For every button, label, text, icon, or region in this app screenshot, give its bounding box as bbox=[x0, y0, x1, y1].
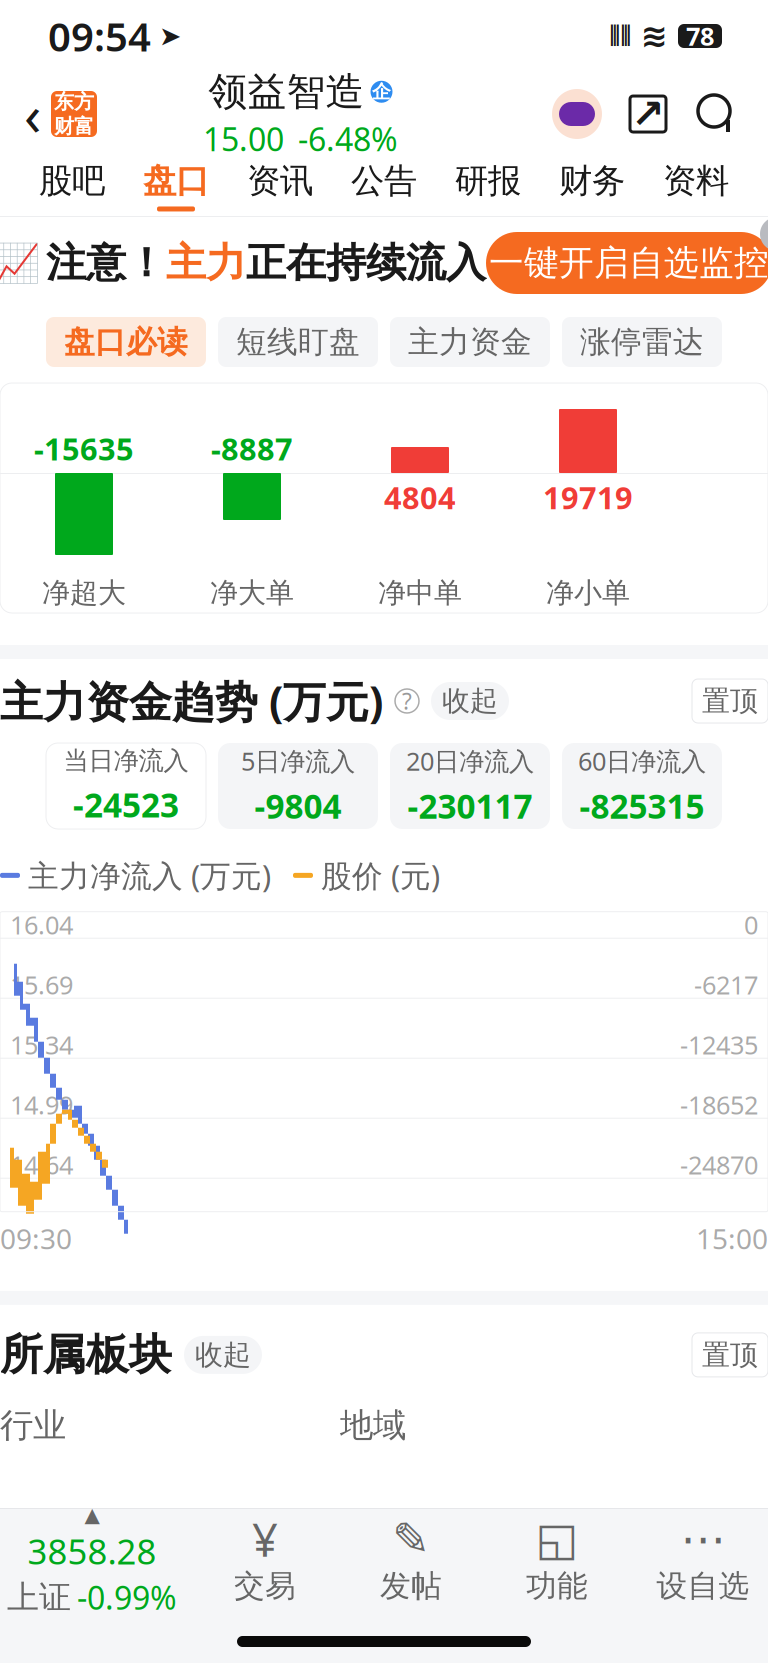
staticText: ✕ bbox=[765, 218, 768, 250]
staticText: 09:30 bbox=[0, 1220, 72, 1257]
staticText: 企 bbox=[372, 80, 391, 103]
button[interactable]: 研报 bbox=[436, 158, 540, 214]
staticText: 净大单 bbox=[210, 576, 294, 610]
button[interactable]: 60日净流入 bbox=[562, 743, 722, 829]
staticText: 财务 bbox=[559, 160, 625, 201]
button[interactable]: 盘口必读 bbox=[46, 317, 206, 367]
button[interactable]: Back bbox=[0, 77, 97, 151]
staticText: -0.99% bbox=[77, 1576, 177, 1619]
button[interactable]: 5日净流入 bbox=[218, 743, 378, 829]
staticText: 收起 bbox=[442, 684, 498, 718]
staticText: -12435 bbox=[680, 1028, 758, 1061]
staticText: 领益智造 bbox=[208, 68, 364, 115]
staticText: ≋ bbox=[641, 18, 668, 54]
staticText: 股价 (元) bbox=[321, 855, 440, 896]
staticText: ◱ bbox=[535, 1513, 578, 1565]
staticText: 净超大 bbox=[42, 576, 126, 610]
staticText: 15.00 bbox=[203, 117, 284, 160]
staticText: 交易 bbox=[234, 1567, 296, 1605]
staticText: 主力资金趋势 (万元) bbox=[0, 673, 383, 729]
staticText: 发帖 bbox=[380, 1567, 442, 1605]
staticText: 置顶 bbox=[702, 1338, 758, 1372]
button[interactable]: Share bbox=[626, 92, 670, 136]
staticText: 当日净流入 bbox=[63, 745, 188, 776]
staticText: 资料 bbox=[663, 160, 729, 201]
button[interactable]: 收起 bbox=[431, 682, 509, 720]
staticText: ⦀⦀ bbox=[609, 24, 631, 48]
staticText: 15.69 bbox=[10, 968, 73, 1001]
staticText: ↗ bbox=[631, 91, 665, 137]
button[interactable]: 盘口 bbox=[124, 158, 228, 214]
staticText: 功能 bbox=[526, 1567, 588, 1605]
button[interactable]: 资讯 bbox=[228, 158, 332, 214]
staticText: 0 bbox=[744, 908, 758, 941]
staticText: 15:00 bbox=[696, 1220, 768, 1257]
staticText: 公告 bbox=[351, 160, 417, 201]
staticText: ✎ bbox=[392, 1513, 430, 1565]
button[interactable]: 当日净流入 bbox=[46, 743, 206, 829]
button[interactable]: 公告 bbox=[332, 158, 436, 214]
staticText: -18652 bbox=[680, 1088, 758, 1121]
button[interactable]: ✎ bbox=[338, 1513, 484, 1609]
staticText: ¥ bbox=[252, 1509, 278, 1569]
staticText: 东方 bbox=[54, 89, 94, 114]
button[interactable]: ¥ bbox=[192, 1513, 338, 1609]
staticText: 09:54 bbox=[48, 9, 151, 62]
button[interactable]: ⋯ bbox=[630, 1513, 768, 1609]
staticText: -825315 bbox=[579, 784, 704, 828]
staticText: 所属板块 bbox=[0, 1329, 172, 1381]
button[interactable]: AI assistant bbox=[552, 89, 602, 139]
staticText: 上证 bbox=[7, 1578, 71, 1617]
button[interactable]: 一键开启自选监控 bbox=[486, 232, 768, 294]
staticText: 净小单 bbox=[546, 576, 630, 610]
staticText: 4804 bbox=[384, 477, 456, 518]
staticText: ▲ bbox=[84, 1503, 99, 1526]
staticText: 盘口必读 bbox=[64, 323, 188, 361]
staticText: -9804 bbox=[254, 784, 341, 828]
button[interactable]: 置顶 bbox=[692, 1333, 768, 1377]
button[interactable]: 财务 bbox=[540, 158, 644, 214]
button[interactable]: Search bbox=[694, 91, 740, 137]
button[interactable]: 20日净流入 bbox=[390, 743, 550, 829]
button[interactable]: 资料 bbox=[644, 158, 748, 214]
staticText: ➤ bbox=[159, 21, 181, 51]
staticText: 盘口 bbox=[143, 160, 209, 201]
staticText: 16.04 bbox=[10, 908, 73, 941]
staticText: 研报 bbox=[455, 160, 521, 201]
staticText: 20日净流入 bbox=[406, 744, 534, 778]
staticText: 78 bbox=[686, 19, 714, 53]
button[interactable]: Close banner bbox=[760, 217, 768, 251]
staticText: -15635 bbox=[34, 428, 134, 469]
staticText: 📈 bbox=[0, 242, 40, 284]
staticText: 14.64 bbox=[10, 1148, 73, 1181]
staticText: 正在持续流入 bbox=[246, 238, 486, 287]
staticText: 60日净流入 bbox=[578, 744, 706, 778]
staticText: 3858.28 bbox=[27, 1528, 156, 1574]
button[interactable]: 涨停雷达 bbox=[562, 317, 722, 367]
staticText: -230117 bbox=[407, 784, 532, 828]
button[interactable]: 股吧 bbox=[20, 158, 124, 214]
button[interactable]: 主力资金 bbox=[390, 317, 550, 367]
staticText: 资讯 bbox=[247, 160, 313, 201]
staticText: ⋯ bbox=[680, 1513, 725, 1565]
staticText: 19719 bbox=[543, 477, 633, 518]
staticText: -24523 bbox=[73, 782, 179, 827]
button[interactable]: ◱ bbox=[484, 1513, 630, 1609]
staticText: 主力资金 bbox=[408, 323, 532, 361]
staticText: ‹ bbox=[24, 77, 41, 151]
button[interactable]: 置顶 bbox=[692, 679, 768, 723]
staticText: 地域 bbox=[340, 1405, 406, 1446]
staticText: 净中单 bbox=[378, 576, 462, 610]
button[interactable]: 短线盯盘 bbox=[218, 317, 378, 367]
staticText: 15.34 bbox=[10, 1028, 73, 1061]
staticText: 短线盯盘 bbox=[236, 323, 360, 361]
staticText: -24870 bbox=[680, 1148, 758, 1181]
staticText: ? bbox=[402, 686, 412, 716]
staticText: 一键开启自选监控 bbox=[489, 242, 768, 284]
button[interactable]: 收起 bbox=[184, 1336, 262, 1374]
staticText: 行业 bbox=[0, 1405, 66, 1446]
staticText: -8887 bbox=[211, 428, 293, 469]
staticText: 设自选 bbox=[656, 1567, 749, 1605]
staticText: -6.48% bbox=[298, 117, 398, 160]
button[interactable]: ▲ bbox=[0, 1511, 192, 1611]
